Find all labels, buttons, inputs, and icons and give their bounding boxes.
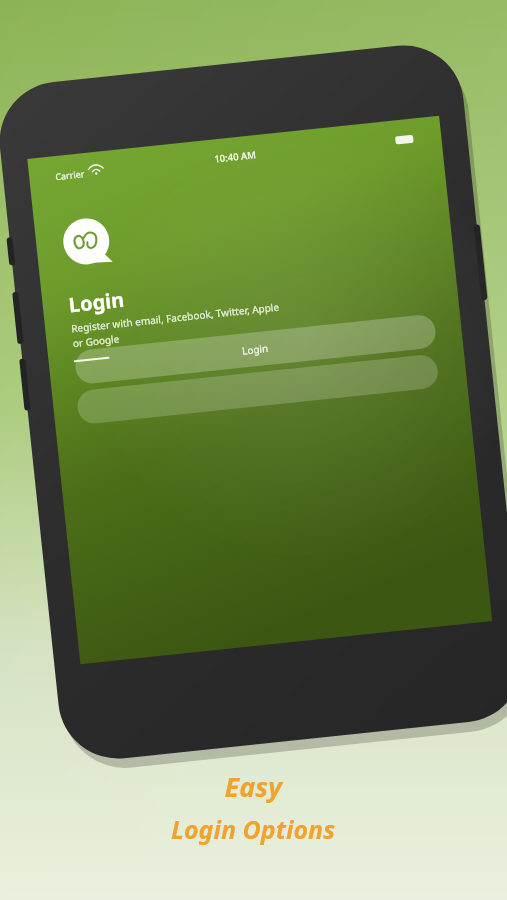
- button[interactable]: Login screen preview: [0, 0, 507, 900]
